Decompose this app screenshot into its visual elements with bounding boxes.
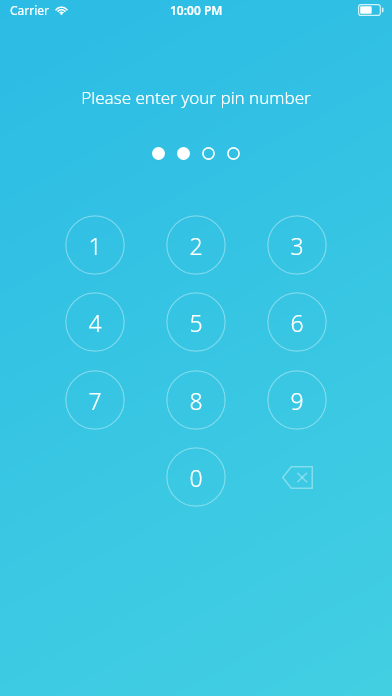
button[interactable]: 1 (65, 215, 125, 275)
button[interactable]: 0 (166, 447, 226, 507)
staticText: 8 (189, 385, 203, 416)
staticText: Carrier (10, 2, 50, 18)
button[interactable]: 3 (267, 215, 327, 275)
button[interactable]: 2 (166, 215, 226, 275)
staticText: 0 (189, 462, 203, 493)
staticText: 7 (88, 385, 102, 416)
staticText: 2 (189, 230, 203, 261)
staticText: 4 (88, 307, 102, 338)
button[interactable]: 6 (267, 292, 327, 352)
button[interactable]: 5 (166, 292, 226, 352)
staticText: 5 (189, 307, 203, 338)
button[interactable]: 7 (65, 370, 125, 430)
staticText: 1 (88, 230, 102, 261)
button[interactable]: Delete (267, 447, 327, 507)
button[interactable]: 8 (166, 370, 226, 430)
staticText: 3 (290, 230, 304, 261)
staticText: Please enter your pin number (81, 86, 311, 109)
staticText: 9 (290, 385, 304, 416)
staticText: 10:00 PM (170, 2, 223, 18)
staticText: 6 (290, 307, 304, 338)
button[interactable]: 4 (65, 292, 125, 352)
button[interactable]: 9 (267, 370, 327, 430)
